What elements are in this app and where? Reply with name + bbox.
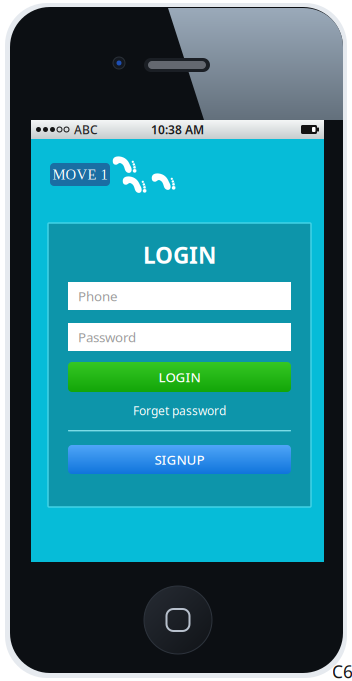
staticText: SIGNUP — [154, 451, 204, 468]
staticText: Password — [78, 328, 136, 346]
button[interactable]: LOGIN — [68, 362, 291, 392]
staticText: MOVE 1 — [52, 166, 107, 183]
staticText: Forget password — [133, 402, 226, 418]
staticText: LOGIN — [158, 368, 200, 386]
button[interactable]: SIGNUP — [68, 445, 291, 474]
staticText: Phone — [78, 287, 118, 305]
button[interactable]: Forget password — [68, 403, 291, 418]
staticText: 10:38 AM — [151, 121, 204, 137]
staticText: C6 — [332, 660, 352, 681]
staticText: ABC — [74, 121, 98, 137]
staticText: LOGIN — [143, 240, 216, 270]
